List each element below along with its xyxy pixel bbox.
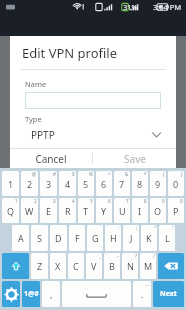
- staticText: L: [165, 232, 170, 244]
- staticText: 7: [119, 178, 125, 190]
- staticText: F: [75, 232, 80, 244]
- button[interactable]: ...: [133, 281, 151, 307]
- button[interactable]: ): [168, 171, 184, 196]
- button[interactable]: Backspace: [158, 253, 184, 279]
- staticText: J: [130, 232, 133, 244]
- button[interactable]: 6: [96, 198, 112, 223]
- button[interactable]: %: [78, 171, 94, 196]
- staticText: Type: [25, 114, 42, 124]
- staticText: V: [91, 260, 97, 272]
- button[interactable]: X: [50, 253, 66, 279]
- staticText: #: [53, 171, 56, 177]
- staticText: C: [73, 260, 79, 272]
- button[interactable]: Next: [153, 281, 184, 307]
- staticText: I: [138, 205, 142, 217]
- button[interactable]: ^: [96, 171, 112, 196]
- staticText: X: [55, 260, 61, 272]
- staticText: 5: [83, 178, 89, 190]
- button[interactable]: PPTP: [10, 124, 176, 145]
- staticText: 6: [108, 198, 111, 204]
- staticText: 9: [162, 198, 165, 204]
- button[interactable]: ': [159, 225, 175, 251]
- button[interactable]: 9: [150, 198, 166, 223]
- button[interactable]: :: [105, 225, 121, 251]
- button[interactable]: $: [59, 171, 76, 196]
- button[interactable]: *: [132, 171, 148, 196]
- staticText: N: [127, 260, 134, 272]
- staticText: /: [153, 253, 155, 259]
- staticText: D: [55, 232, 62, 244]
- button[interactable]: #: [40, 171, 57, 196]
- button[interactable]: 5: [78, 198, 94, 223]
- button[interactable]: F: [69, 225, 85, 251]
- staticText: 9: [155, 178, 161, 190]
- button[interactable]: ?: [122, 253, 138, 279]
- staticText: Cancel: [35, 152, 67, 166]
- staticText: B: [109, 260, 115, 272]
- button[interactable]: D: [50, 225, 67, 251]
- staticText: T: [83, 205, 89, 217]
- staticText: 3: [53, 198, 56, 204]
- button[interactable]: 3: [40, 198, 57, 223]
- staticText: ,: [50, 288, 53, 300]
- button[interactable]: _: [86, 253, 102, 279]
- staticText: 0: [180, 198, 183, 204]
- button[interactable]: 1: [2, 198, 19, 223]
- staticText: $: [72, 171, 75, 177]
- button[interactable]: &: [114, 171, 130, 196]
- button[interactable]: S: [31, 225, 48, 251]
- staticText: 7: [126, 198, 129, 204]
- button[interactable]: 4: [59, 198, 76, 223]
- button[interactable]: ;: [123, 225, 139, 251]
- button[interactable]: [25, 92, 161, 109]
- button[interactable]: @: [21, 171, 38, 196]
- button[interactable]: /: [140, 253, 156, 279]
- staticText: Q: [7, 205, 15, 217]
- button[interactable]: 8: [132, 198, 148, 223]
- button[interactable]: 1: [2, 171, 19, 196]
- staticText: ...: [146, 281, 150, 287]
- button[interactable]: C: [68, 253, 84, 279]
- staticText: 3:04 PM: [153, 2, 182, 12]
- button[interactable]: Save: [93, 149, 176, 168]
- staticText: 4: [72, 198, 75, 204]
- button[interactable]: Shift: [2, 253, 29, 279]
- button[interactable]: G: [87, 225, 103, 251]
- staticText: .: [141, 288, 144, 300]
- staticText: @: [32, 171, 37, 177]
- button[interactable]: 7: [114, 198, 130, 223]
- staticText: R: [65, 205, 71, 217]
- staticText: K: [146, 232, 152, 244]
- staticText: U: [119, 205, 126, 217]
- staticText: PPTP: [31, 128, 55, 142]
- button[interactable]: Keyboard settings: [2, 281, 20, 307]
- staticText: ): [181, 171, 183, 177]
- button[interactable]: 0: [168, 198, 184, 223]
- staticText: M: [144, 260, 153, 272]
- staticText: 31%: [123, 2, 138, 12]
- button[interactable]: (: [150, 171, 166, 196]
- staticText: 8: [137, 178, 143, 190]
- staticText: 8: [144, 198, 147, 204]
- staticText: S: [37, 232, 42, 244]
- staticText: H: [110, 232, 117, 244]
- staticText: ;: [136, 225, 138, 231]
- button[interactable]: 1@#: [22, 281, 40, 307]
- staticText: &: [125, 171, 129, 177]
- button[interactable]: ": [141, 225, 157, 251]
- button[interactable]: Space: [62, 281, 131, 307]
- button[interactable]: -: [104, 253, 120, 279]
- button[interactable]: ,: [42, 281, 60, 307]
- staticText: Next: [160, 289, 177, 299]
- button[interactable]: Cancel: [10, 149, 92, 168]
- staticText: ?: [135, 253, 137, 259]
- staticText: 5: [90, 198, 93, 204]
- staticText: P: [173, 205, 179, 217]
- button[interactable]: A: [12, 225, 29, 251]
- staticText: %: [89, 171, 93, 177]
- staticText: -: [117, 253, 119, 259]
- staticText: A: [18, 232, 24, 244]
- button[interactable]: 2: [21, 198, 38, 223]
- staticText: Save: [124, 152, 146, 166]
- button[interactable]: Z: [31, 253, 48, 279]
